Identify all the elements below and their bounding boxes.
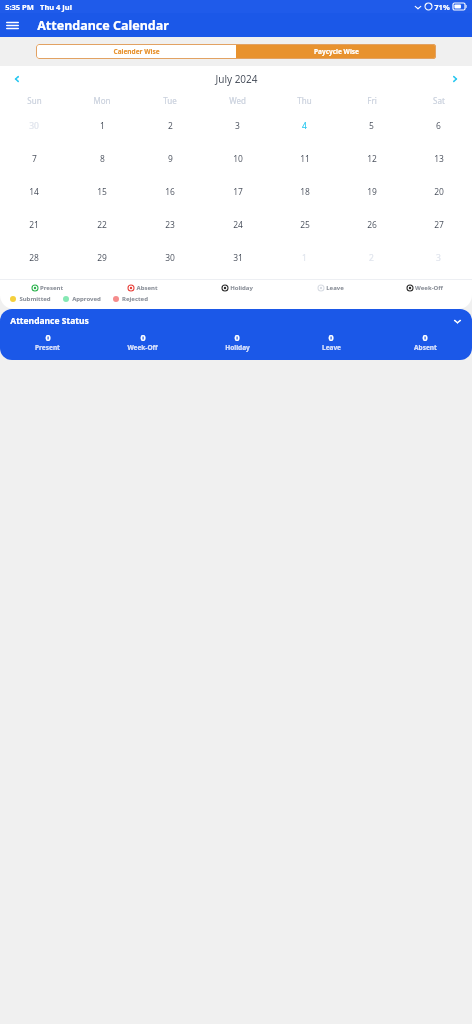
staticText: 71%	[434, 2, 450, 12]
button[interactable]: 19	[338, 175, 405, 208]
staticText: 31	[233, 252, 243, 264]
staticText: 16	[165, 186, 175, 198]
button[interactable]: Open navigation menu	[0, 13, 24, 37]
button[interactable]: 12	[338, 142, 405, 175]
button[interactable]: Previous month	[8, 70, 26, 88]
staticText: Wed	[229, 95, 246, 106]
staticText: 2	[168, 120, 173, 132]
staticText: Calender Wise	[113, 47, 160, 56]
button[interactable]: Rejected	[113, 295, 148, 303]
staticText: 5	[369, 120, 374, 132]
button[interactable]: 23	[136, 208, 204, 241]
button[interactable]: 25	[271, 208, 338, 241]
button[interactable]: 15	[68, 175, 136, 208]
button[interactable]: 18	[271, 175, 338, 208]
staticText: Present	[40, 284, 63, 292]
button[interactable]: 0	[190, 331, 284, 352]
staticText: 1	[100, 120, 105, 132]
button[interactable]: Calender Wise	[36, 44, 236, 59]
staticText: Holiday	[230, 284, 253, 292]
staticText: 4	[302, 120, 307, 132]
staticText: Tue	[163, 95, 177, 106]
button[interactable]: 13	[405, 142, 472, 175]
staticText: 27	[434, 219, 444, 231]
staticText: Mon	[93, 95, 111, 106]
button[interactable]: 30	[136, 241, 204, 274]
staticText: Leave	[322, 343, 341, 352]
button[interactable]: 28	[0, 241, 68, 274]
button[interactable]: 22	[68, 208, 136, 241]
staticText: Sun	[27, 95, 42, 106]
button[interactable]: 2	[136, 109, 204, 142]
staticText: 30	[29, 120, 39, 132]
button[interactable]: 10	[204, 142, 271, 175]
staticText: 24	[233, 219, 243, 231]
button[interactable]: 0	[284, 331, 378, 352]
button[interactable]: 27	[405, 208, 472, 241]
button[interactable]: 9	[136, 142, 204, 175]
staticText: Absent	[136, 284, 158, 292]
button[interactable]: Holiday	[190, 284, 284, 292]
button[interactable]: Expand attendance status	[450, 314, 464, 328]
staticText: 14	[29, 186, 39, 198]
button[interactable]: 17	[204, 175, 271, 208]
staticText: 13	[434, 153, 444, 165]
button[interactable]: Approved	[63, 295, 101, 303]
staticText: 0	[140, 331, 146, 343]
button[interactable]: 14	[0, 175, 68, 208]
button[interactable]: 31	[204, 241, 271, 274]
button[interactable]: 0	[95, 331, 190, 352]
button[interactable]: 3	[204, 109, 271, 142]
staticText: Thu 4 Jul	[40, 2, 72, 12]
button[interactable]: 0	[378, 331, 472, 352]
button[interactable]: 4	[271, 109, 338, 142]
button[interactable]: 21	[0, 208, 68, 241]
staticText: Fri	[367, 95, 377, 106]
staticText: Leave	[326, 284, 344, 292]
button[interactable]: Week-Off	[378, 284, 472, 292]
button[interactable]: Paycycle Wise	[236, 44, 436, 59]
staticText: 29	[97, 252, 107, 264]
staticText: Attendance Calendar	[37, 17, 169, 34]
staticText: 30	[165, 252, 175, 264]
staticText: Absent	[414, 343, 437, 352]
button[interactable]: 1	[68, 109, 136, 142]
button[interactable]: 6	[405, 109, 472, 142]
button[interactable]: Leave	[284, 284, 378, 292]
staticText: Approved	[72, 295, 101, 303]
staticText: 19	[367, 186, 377, 198]
button[interactable]: 24	[204, 208, 271, 241]
button[interactable]: Attendance Status	[0, 309, 472, 360]
button[interactable]: Present	[0, 284, 95, 292]
staticText: 15	[97, 186, 107, 198]
staticText: Present	[35, 343, 60, 352]
staticText: 18	[300, 186, 310, 198]
staticText: 8	[100, 153, 105, 165]
staticText: Week-Off	[127, 343, 158, 352]
button[interactable]: 11	[271, 142, 338, 175]
staticText: 0	[45, 331, 51, 343]
staticText: 1	[302, 252, 307, 264]
staticText: 17	[233, 186, 243, 198]
staticText: 6	[436, 120, 441, 132]
button[interactable]: Next month	[446, 70, 464, 88]
staticText: 23	[165, 219, 175, 231]
staticText: 20	[434, 186, 444, 198]
button[interactable]: Submitted	[10, 295, 51, 303]
button[interactable]: 26	[338, 208, 405, 241]
button[interactable]: 16	[136, 175, 204, 208]
button[interactable]: 20	[405, 175, 472, 208]
button[interactable]: 29	[68, 241, 136, 274]
button[interactable]: 7	[0, 142, 68, 175]
button[interactable]: 8	[68, 142, 136, 175]
staticText: Sat	[433, 95, 445, 106]
button[interactable]: 0	[0, 331, 95, 352]
button[interactable]: Absent	[95, 284, 190, 292]
staticText: 12	[367, 153, 377, 165]
button[interactable]: 5	[338, 109, 405, 142]
staticText: Submitted	[19, 295, 51, 303]
